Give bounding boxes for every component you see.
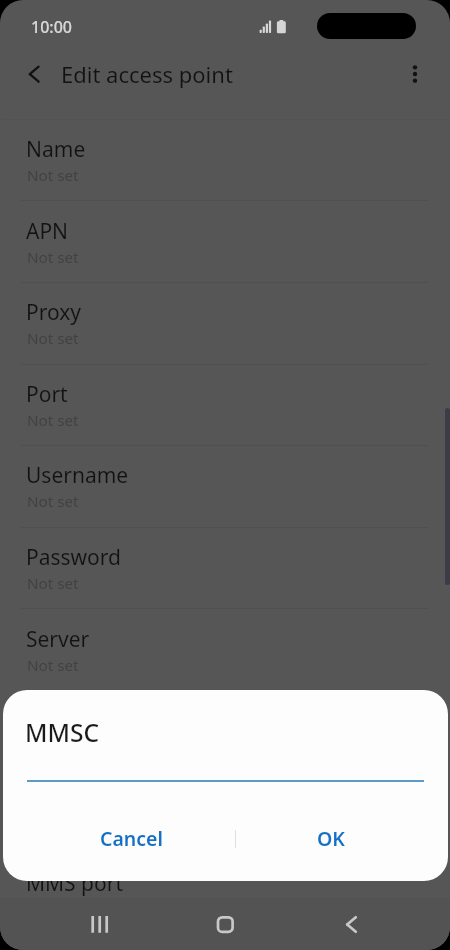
staticText: Username (26, 461, 129, 490)
button[interactable]: Proxy (0, 283, 450, 365)
staticText: Not set (27, 328, 79, 349)
button[interactable]: MMS port (0, 854, 450, 936)
button[interactable]: Recent apps (75, 898, 125, 950)
button[interactable]: Name (0, 120, 450, 202)
staticText: MMSC (25, 716, 100, 749)
button[interactable]: OK (238, 816, 423, 861)
button[interactable]: Password (0, 528, 450, 610)
button[interactable]: Server (0, 610, 450, 692)
staticText: MMSC (26, 706, 89, 735)
staticText: Not set (27, 573, 79, 594)
staticText: Not set (27, 655, 79, 676)
staticText: OK (317, 825, 345, 852)
button[interactable]: Back (327, 898, 377, 950)
button[interactable]: APN (0, 202, 450, 284)
button[interactable]: MMS proxy (0, 773, 450, 855)
button[interactable]: Username (0, 446, 450, 528)
staticText: Edit access point (61, 59, 233, 89)
button[interactable]: Port (0, 365, 450, 447)
staticText: Cancel (100, 825, 164, 852)
staticText: MMS port (26, 869, 123, 898)
staticText: Port (26, 380, 68, 409)
staticText: Proxy (26, 298, 82, 327)
button[interactable]: More options (395, 54, 435, 94)
button[interactable]: Home (200, 898, 250, 950)
staticText: Server (26, 625, 90, 654)
button[interactable]: Cancel (27, 816, 236, 861)
staticText: Not set (27, 736, 79, 757)
staticText: Name (26, 135, 86, 164)
staticText: 10:00 (31, 16, 72, 38)
staticText: Not set (27, 247, 79, 268)
staticText: Password (26, 543, 121, 572)
staticText: APN (26, 217, 69, 246)
staticText: Not set (27, 410, 79, 431)
button[interactable]: Navigate up (14, 54, 54, 94)
staticText: Not set (27, 491, 79, 512)
staticText: Not set (27, 165, 79, 186)
button[interactable]: MMSC (0, 691, 450, 773)
